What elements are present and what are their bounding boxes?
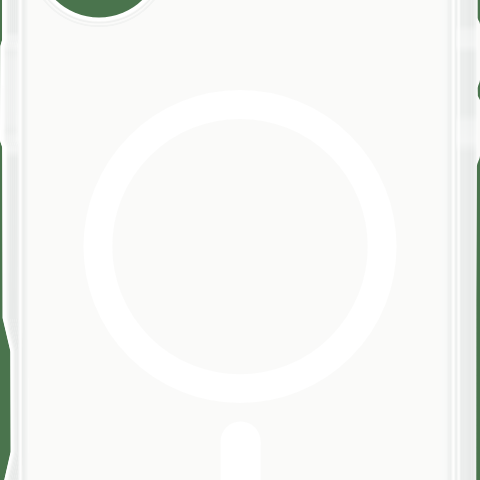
- other: Clear phone case with MagSafe ring: [0, 0, 480, 480]
